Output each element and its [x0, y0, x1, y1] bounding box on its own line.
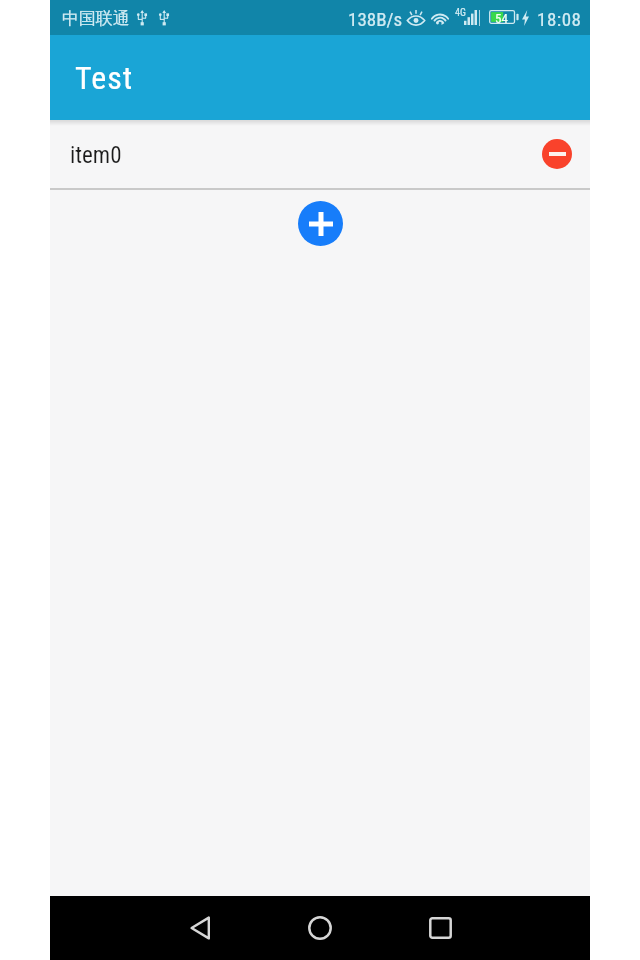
staticText: 中国联通: [62, 8, 130, 29]
button[interactable]: Home: [290, 896, 350, 960]
button[interactable]: Back: [170, 896, 230, 960]
staticText: 138B/s: [348, 8, 403, 30]
button[interactable]: Add item: [298, 201, 343, 246]
staticText: 54: [495, 11, 508, 26]
staticText: item0: [70, 142, 122, 169]
staticText: 4G: [455, 7, 466, 19]
staticText: 18:08: [537, 8, 582, 30]
button[interactable]: Remove item0: [542, 139, 572, 169]
button[interactable]: item0: [50, 120, 590, 188]
button[interactable]: Recent apps: [410, 896, 470, 960]
staticText: Test: [75, 59, 134, 97]
